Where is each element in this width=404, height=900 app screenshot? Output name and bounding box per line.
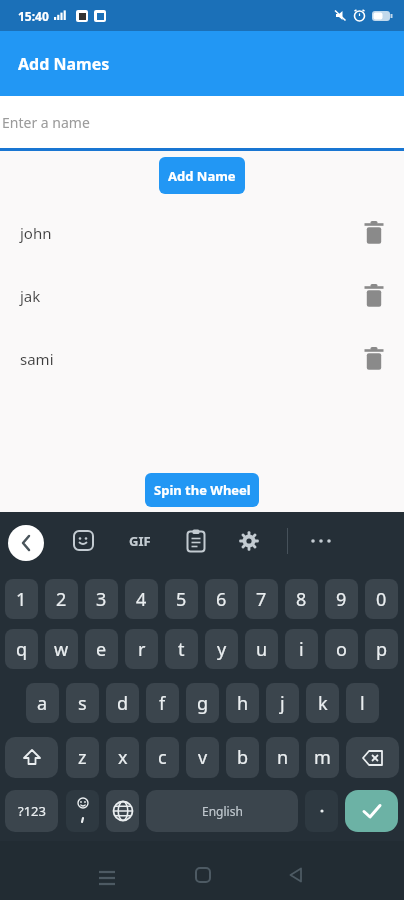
staticText: t	[178, 637, 185, 662]
staticText: 15:40	[18, 8, 49, 24]
button[interactable]: h	[226, 683, 259, 723]
button[interactable]: i	[285, 629, 318, 669]
staticText: u	[256, 637, 268, 662]
staticText: s	[78, 691, 87, 716]
button[interactable]: j	[266, 683, 299, 723]
button[interactable]: q	[5, 629, 38, 669]
button[interactable]: a	[26, 683, 59, 723]
staticText: Add Name	[168, 167, 236, 185]
button[interactable]: 2	[45, 579, 78, 619]
button[interactable]: 8	[285, 579, 318, 619]
button[interactable]: 0	[365, 579, 398, 619]
staticText: g	[197, 691, 209, 716]
staticText: 8	[296, 587, 307, 612]
button[interactable]: e	[85, 629, 118, 669]
button[interactable]: john	[0, 201, 404, 264]
button[interactable]	[364, 347, 384, 370]
staticText: ?123	[18, 802, 46, 820]
button[interactable]: Spin the Wheel	[145, 473, 259, 507]
button[interactable]: x	[106, 737, 139, 778]
staticText: sami	[20, 349, 54, 369]
button[interactable]	[5, 737, 58, 778]
button[interactable]	[346, 737, 399, 778]
staticText: Add Names	[18, 53, 110, 75]
button[interactable]: 3	[85, 579, 118, 619]
button[interactable]: Add Name	[159, 157, 245, 194]
staticText: f	[159, 691, 166, 716]
button[interactable]: 5	[165, 579, 198, 619]
button[interactable]: Add Names	[0, 31, 404, 96]
button[interactable]: 4	[125, 579, 158, 619]
staticText: jak	[20, 286, 41, 306]
button[interactable]	[73, 530, 95, 552]
button[interactable]: d	[106, 683, 139, 723]
button[interactable]	[345, 790, 398, 832]
button[interactable]	[106, 790, 139, 832]
staticText: d	[117, 691, 129, 716]
button[interactable]	[238, 530, 260, 552]
staticText: i	[299, 637, 304, 662]
button[interactable]: s	[66, 683, 99, 723]
button[interactable]: sami	[0, 327, 404, 390]
staticText: 9	[336, 587, 347, 612]
staticText: r	[138, 637, 146, 662]
staticText: c	[158, 745, 167, 770]
button[interactable]	[309, 536, 335, 546]
button[interactable]: English	[146, 790, 298, 832]
staticText: a	[37, 691, 48, 716]
staticText: 0	[376, 587, 387, 612]
staticText: Enter a name	[2, 113, 90, 132]
button[interactable]: u	[245, 629, 278, 669]
button[interactable]: Enter a name	[0, 96, 404, 148]
staticText: j	[280, 691, 285, 716]
button[interactable]	[288, 867, 303, 883]
button[interactable]: 7	[245, 579, 278, 619]
button[interactable]: l	[346, 683, 379, 723]
staticText: e	[96, 637, 107, 662]
staticText: 1	[16, 587, 27, 612]
button[interactable]	[98, 869, 116, 885]
button[interactable]: f	[146, 683, 179, 723]
staticText: x	[118, 745, 128, 770]
button[interactable]	[305, 790, 338, 832]
button[interactable]: y	[205, 629, 238, 669]
button[interactable]	[66, 790, 99, 832]
staticText: h	[237, 691, 249, 716]
button[interactable]: jak	[0, 264, 404, 327]
button[interactable]	[186, 529, 206, 553]
button[interactable]	[364, 221, 384, 244]
staticText: 4	[136, 587, 147, 612]
staticText: 7	[256, 587, 267, 612]
button[interactable]: z	[66, 737, 99, 778]
staticText: m	[314, 745, 331, 770]
button[interactable]: r	[125, 629, 158, 669]
button[interactable]: w	[45, 629, 78, 669]
staticText: 3	[96, 587, 107, 612]
button[interactable]: k	[306, 683, 339, 723]
button[interactable]: m	[306, 737, 339, 778]
button[interactable]: o	[325, 629, 358, 669]
staticText: o	[336, 637, 347, 662]
button[interactable]	[364, 284, 384, 307]
button[interactable]: b	[226, 737, 259, 778]
staticText: y	[217, 637, 227, 662]
button[interactable]: g	[186, 683, 219, 723]
button[interactable]: v	[186, 737, 219, 778]
button[interactable]: n	[266, 737, 299, 778]
button[interactable]: GIF	[125, 531, 155, 551]
staticText: john	[20, 223, 52, 243]
button[interactable]: ?123	[5, 790, 58, 832]
button[interactable]	[195, 867, 211, 883]
staticText: GIF	[129, 532, 151, 550]
staticText: p	[376, 637, 388, 662]
button[interactable]: t	[165, 629, 198, 669]
button[interactable]: 9	[325, 579, 358, 619]
staticText: w	[54, 637, 69, 662]
button[interactable]	[8, 525, 44, 561]
staticText: 5	[176, 587, 187, 612]
button[interactable]: 6	[205, 579, 238, 619]
button[interactable]: p	[365, 629, 398, 669]
staticText: n	[277, 745, 289, 770]
button[interactable]: c	[146, 737, 179, 778]
button[interactable]: 1	[5, 579, 38, 619]
